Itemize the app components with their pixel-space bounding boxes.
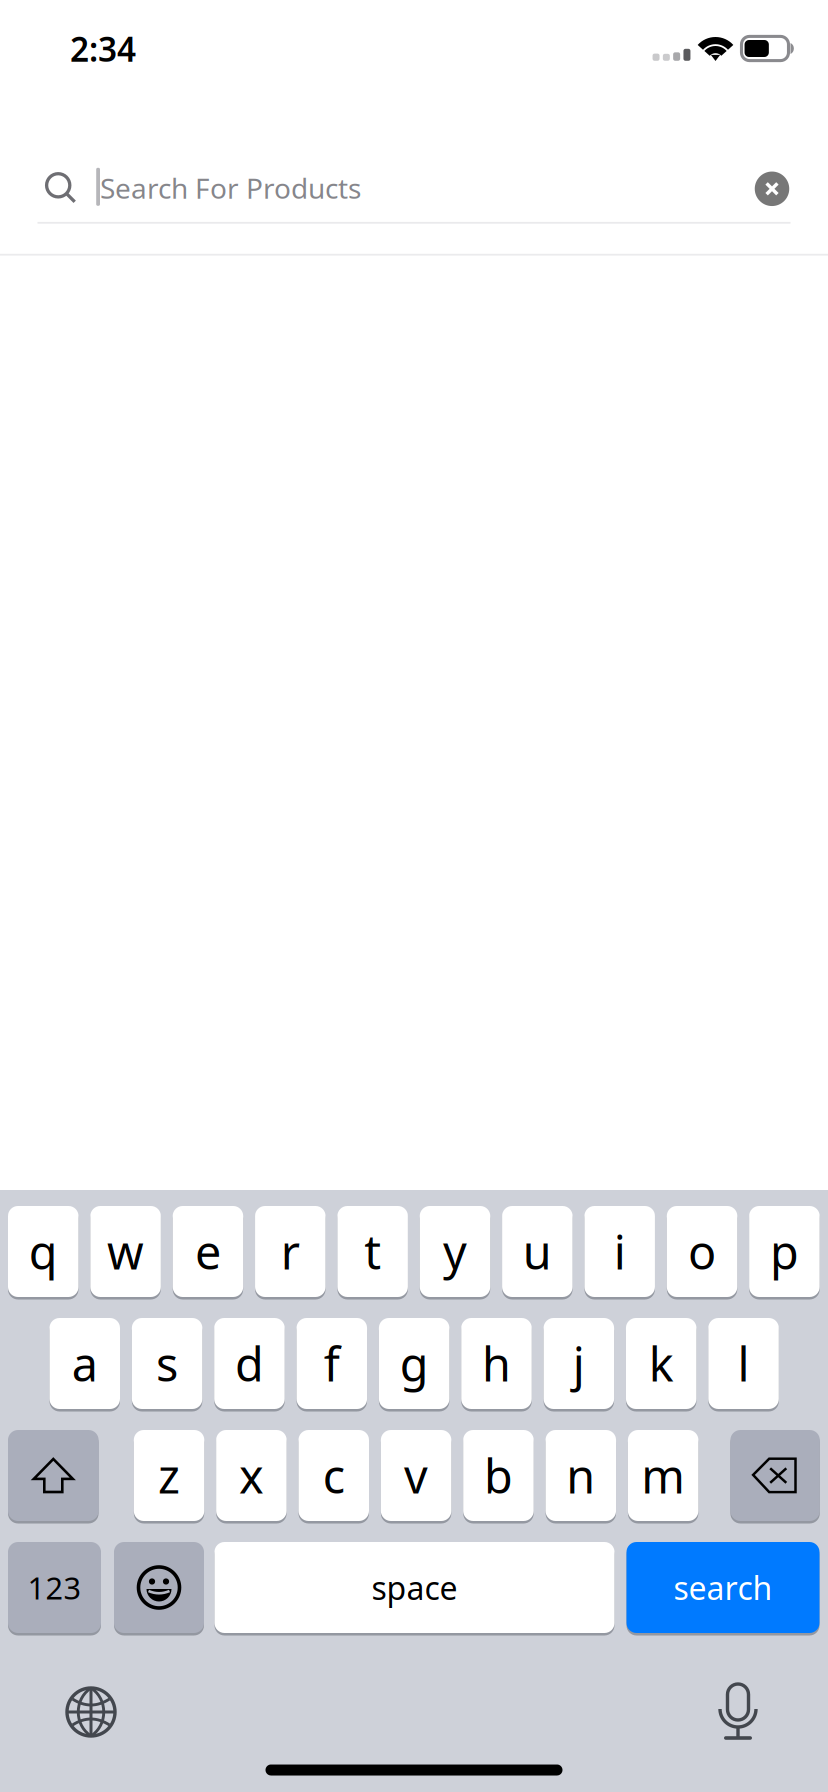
- button[interactable]: c: [298, 1428, 369, 1523]
- button[interactable]: r: [255, 1204, 325, 1299]
- button[interactable]: b: [463, 1428, 534, 1523]
- staticText: z: [158, 1444, 180, 1506]
- button[interactable]: n: [545, 1428, 616, 1523]
- staticText: x: [239, 1444, 264, 1506]
- button[interactable]: a: [49, 1316, 120, 1411]
- button[interactable]: v: [381, 1428, 451, 1523]
- staticText: u: [523, 1220, 552, 1282]
- button[interactable]: z: [134, 1428, 204, 1523]
- button[interactable]: h: [461, 1316, 532, 1411]
- staticText: a: [72, 1332, 98, 1394]
- button[interactable]: k: [626, 1316, 696, 1411]
- button[interactable]: x: [216, 1428, 287, 1523]
- button[interactable]: search: [626, 1540, 819, 1635]
- staticText: g: [400, 1332, 429, 1394]
- button[interactable]: Shift: [8, 1428, 99, 1523]
- button[interactable]: Next keyboard: [49, 1670, 133, 1754]
- staticText: q: [29, 1220, 58, 1282]
- staticText: search: [673, 1566, 772, 1609]
- button[interactable]: u: [502, 1204, 573, 1299]
- button[interactable]: f: [296, 1316, 367, 1411]
- staticText: n: [566, 1444, 595, 1506]
- button[interactable]: Emoji keyboard: [114, 1540, 204, 1635]
- staticText: t: [364, 1220, 381, 1282]
- button[interactable]: p: [749, 1204, 820, 1299]
- button[interactable]: o: [667, 1204, 737, 1299]
- staticText: m: [641, 1444, 685, 1506]
- staticText: e: [195, 1220, 221, 1282]
- button[interactable]: space: [214, 1540, 614, 1635]
- staticText: j: [573, 1332, 585, 1394]
- staticText: w: [107, 1220, 144, 1282]
- staticText: l: [737, 1332, 749, 1394]
- staticText: r: [281, 1220, 300, 1282]
- button[interactable]: Search For Products: [0, 140, 828, 236]
- button[interactable]: Clear search text: [749, 166, 795, 212]
- staticText: p: [770, 1220, 799, 1282]
- button[interactable]: q: [8, 1204, 78, 1299]
- staticText: d: [235, 1332, 264, 1394]
- button[interactable]: y: [420, 1204, 490, 1299]
- button[interactable]: e: [173, 1204, 243, 1299]
- staticText: o: [688, 1220, 716, 1282]
- button[interactable]: s: [132, 1316, 202, 1411]
- button[interactable]: 123: [8, 1540, 101, 1635]
- button[interactable]: l: [708, 1316, 779, 1411]
- staticText: v: [404, 1444, 428, 1506]
- staticText: i: [614, 1220, 626, 1282]
- staticText: h: [482, 1332, 511, 1394]
- staticText: 123: [27, 1567, 81, 1608]
- button[interactable]: j: [544, 1316, 614, 1411]
- button[interactable]: i: [584, 1204, 655, 1299]
- staticText: f: [324, 1332, 340, 1394]
- staticText: 2:34: [70, 27, 136, 71]
- button[interactable]: Dictation: [696, 1670, 780, 1754]
- staticText: space: [371, 1566, 457, 1609]
- staticText: Search For Products: [100, 169, 361, 207]
- button[interactable]: m: [628, 1428, 698, 1523]
- button[interactable]: d: [214, 1316, 285, 1411]
- staticText: s: [156, 1332, 178, 1394]
- staticText: c: [323, 1444, 345, 1506]
- button[interactable]: g: [379, 1316, 449, 1411]
- staticText: b: [484, 1444, 513, 1506]
- button[interactable]: Delete: [730, 1428, 820, 1523]
- button[interactable]: w: [90, 1204, 161, 1299]
- staticText: y: [443, 1220, 467, 1282]
- staticText: k: [649, 1332, 674, 1394]
- button[interactable]: t: [337, 1204, 408, 1299]
